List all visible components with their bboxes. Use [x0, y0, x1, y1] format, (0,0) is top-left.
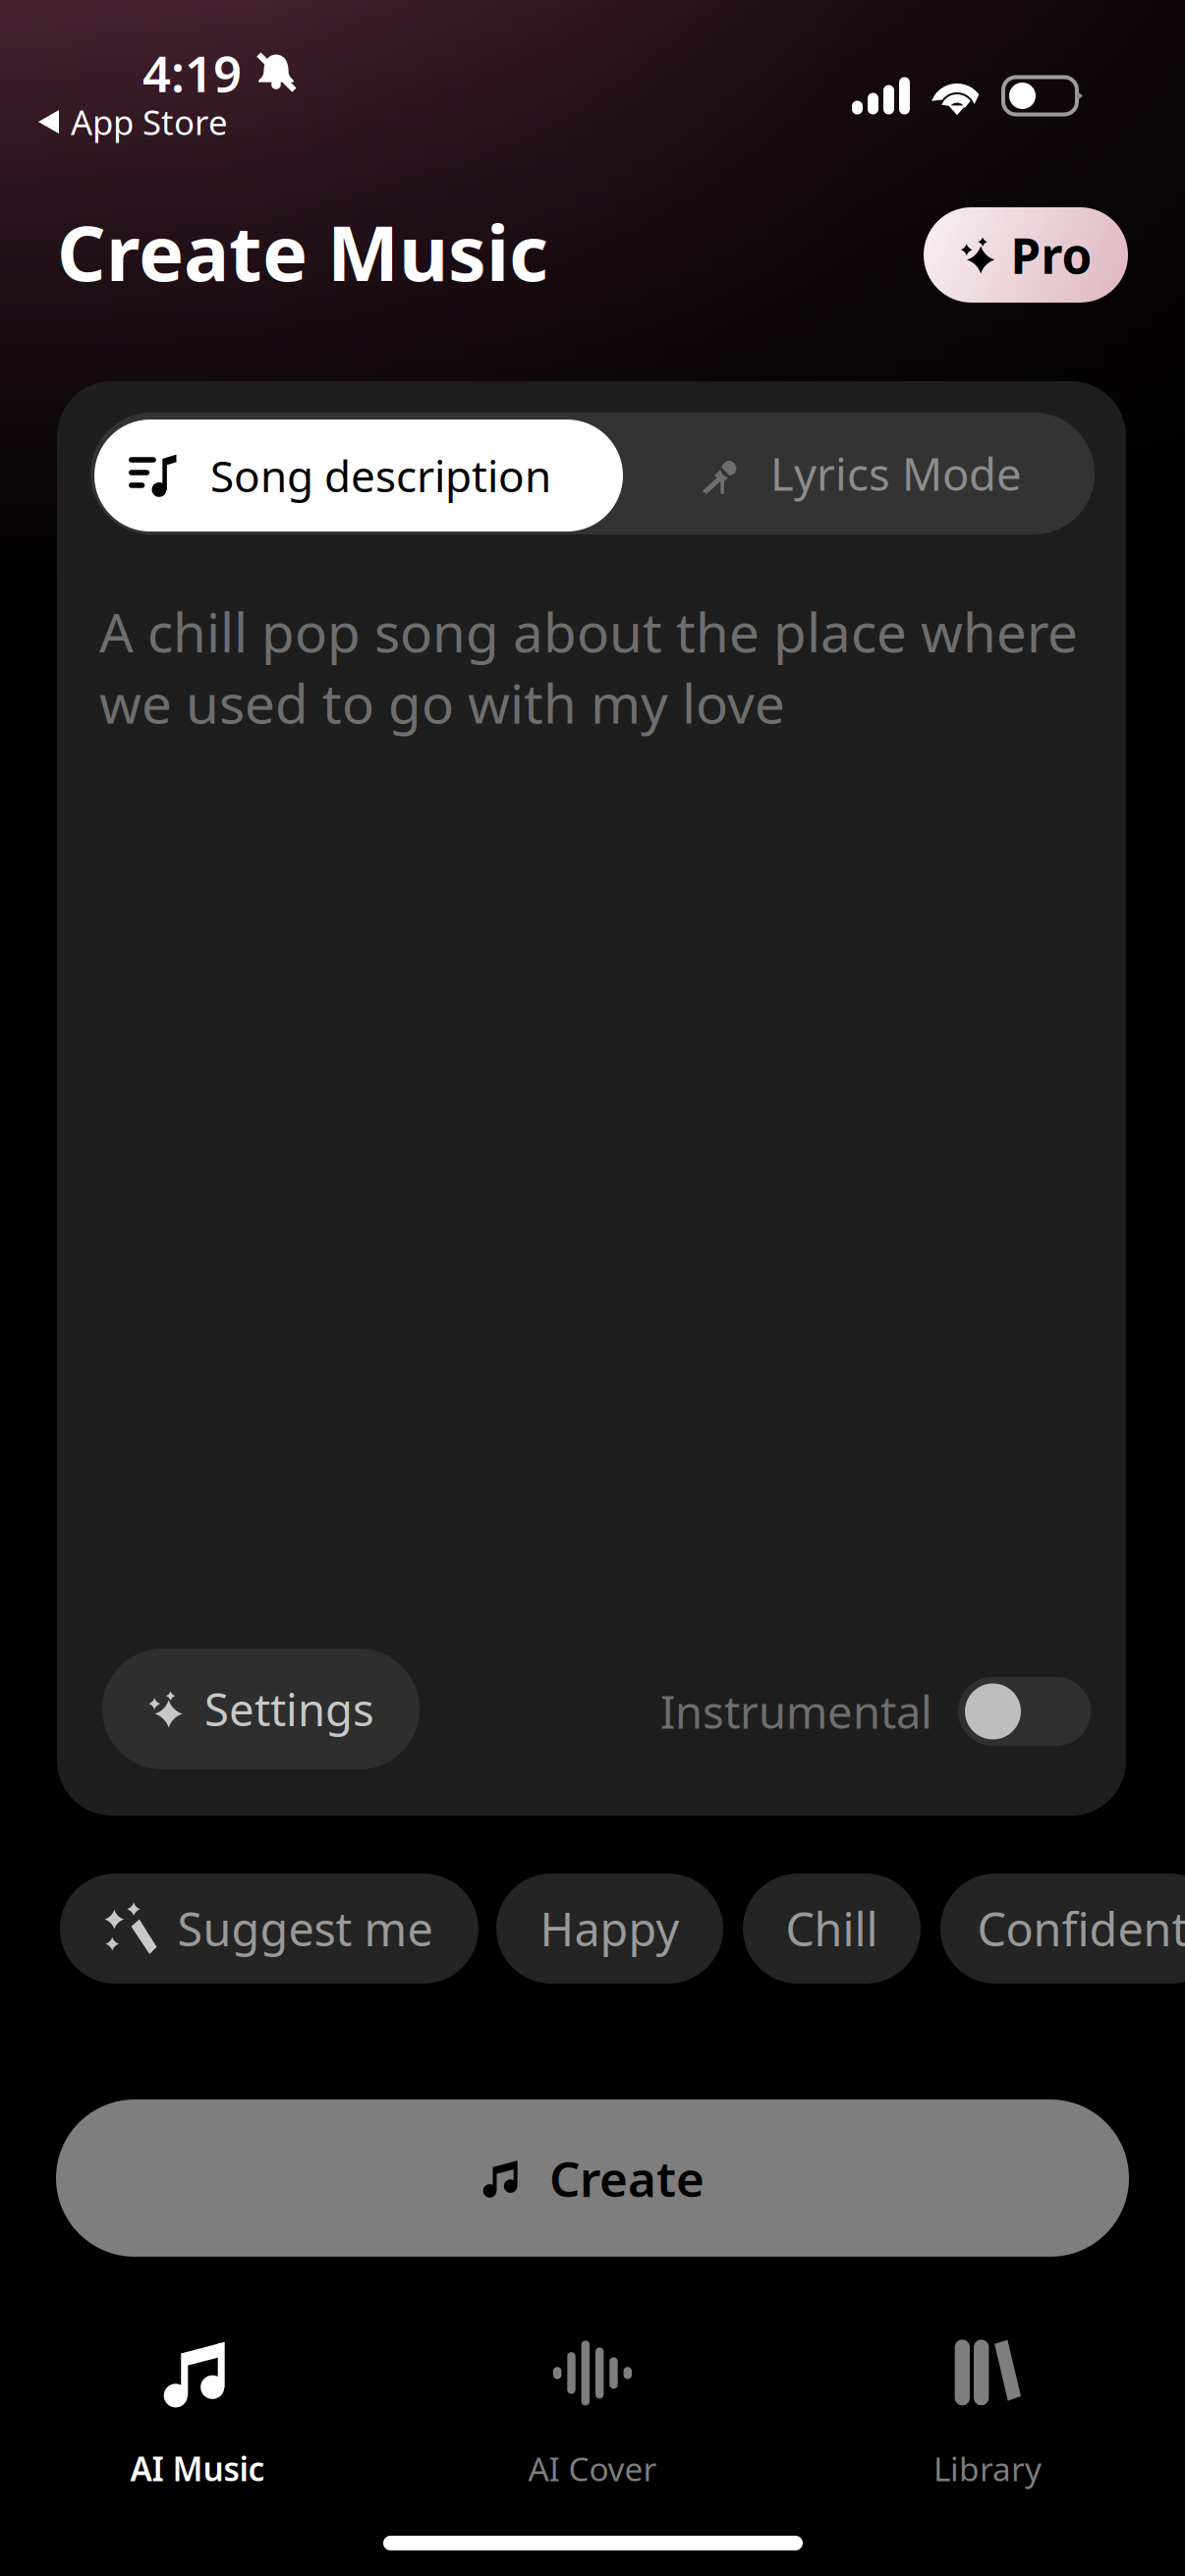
staticText: Create: [549, 2146, 705, 2210]
button[interactable]: Chill: [743, 1874, 921, 1984]
button[interactable]: Create: [56, 2100, 1129, 2257]
button[interactable]: Instrumental: [649, 1660, 1091, 1763]
button[interactable]: Library: [790, 2309, 1185, 2486]
button[interactable]: AI Music: [0, 2309, 395, 2486]
staticText: AI Music: [130, 2447, 265, 2490]
staticText: 4:19: [142, 40, 242, 106]
button[interactable]: Pro: [924, 207, 1128, 303]
staticText: Settings: [204, 1679, 374, 1739]
staticText: Confident: [977, 1898, 1185, 1959]
staticText: AI Cover: [528, 2447, 657, 2490]
staticText: Pro: [1011, 223, 1092, 287]
staticText: Instrumental: [660, 1682, 932, 1741]
staticText: Library: [933, 2447, 1042, 2490]
staticText: Happy: [540, 1898, 679, 1959]
staticText: Chill: [786, 1898, 878, 1959]
button[interactable]: Happy: [496, 1874, 723, 1984]
button[interactable]: Song description: [94, 420, 623, 532]
button[interactable]: Settings: [102, 1649, 420, 1769]
button[interactable]: Lyrics Mode: [629, 413, 1095, 534]
staticText: Suggest me: [177, 1898, 433, 1959]
button[interactable]: Suggest me: [60, 1874, 479, 1984]
button[interactable]: Confident: [940, 1874, 1185, 1984]
staticText: Create Music: [57, 201, 548, 302]
button[interactable]: AI Cover: [395, 2309, 790, 2486]
staticText: A chill pop song about the place where w…: [99, 596, 1078, 738]
staticText: Lyrics Mode: [770, 444, 1022, 503]
staticText: Song description: [210, 447, 551, 504]
staticText: App Store: [71, 99, 228, 144]
